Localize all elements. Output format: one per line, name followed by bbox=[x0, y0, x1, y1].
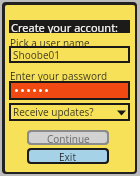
button[interactable]: Shoobe01 bbox=[11, 48, 128, 61]
staticText: Shoobe01 bbox=[13, 48, 60, 61]
staticText: Continue bbox=[47, 132, 90, 143]
button[interactable]: Continue bbox=[29, 132, 107, 143]
staticText: Exit bbox=[59, 150, 77, 162]
staticText: Enter your password bbox=[10, 69, 108, 83]
button[interactable]: Receive updates? bbox=[11, 105, 128, 119]
other: Open dropdown bbox=[115, 106, 128, 119]
staticText: Pick a user name bbox=[10, 36, 90, 50]
button[interactable] bbox=[11, 83, 128, 98]
staticText: Create your account: bbox=[11, 20, 119, 33]
button[interactable]: Exit bbox=[29, 150, 107, 162]
staticText: Receive updates? bbox=[13, 105, 94, 119]
